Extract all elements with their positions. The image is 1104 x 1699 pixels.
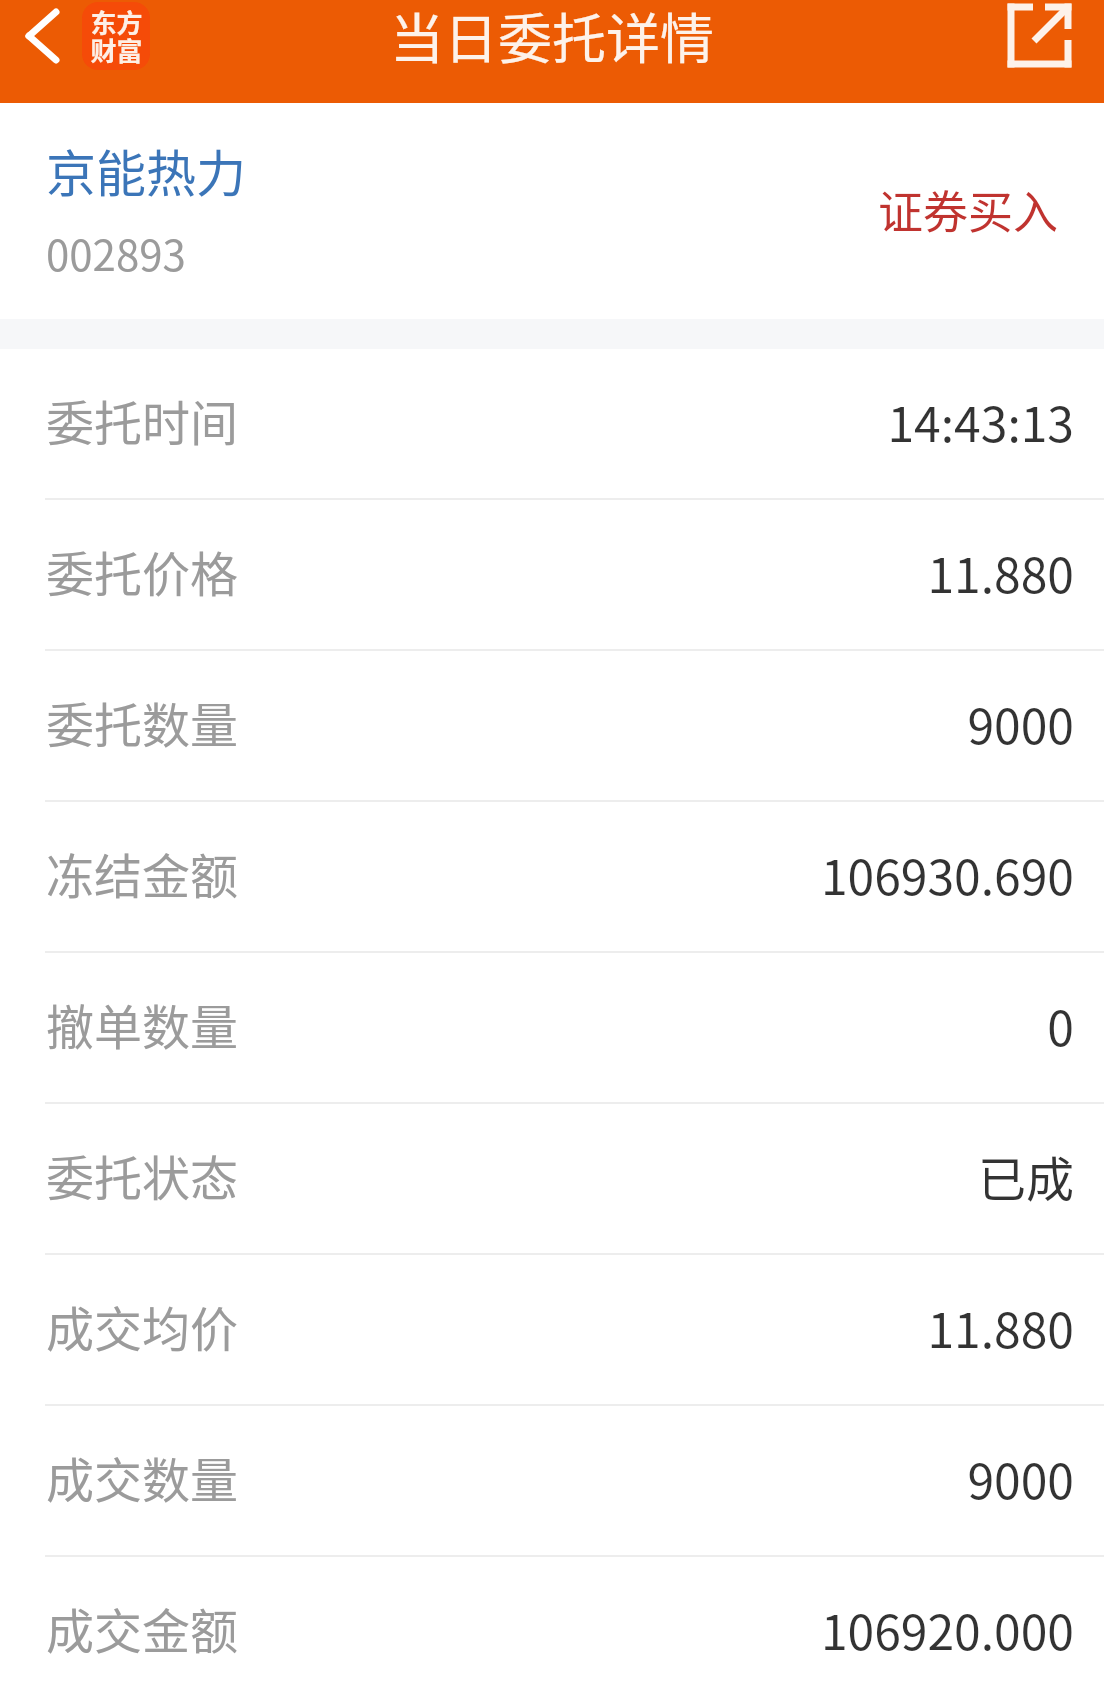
staticText: 委托状态 — [46, 1140, 239, 1210]
button[interactable]: 成交均价 — [0, 1255, 1104, 1406]
staticText: 9000 — [247, 688, 1074, 758]
button[interactable]: 委托价格 — [0, 500, 1104, 651]
staticText: 106920.000 — [247, 1594, 1074, 1664]
button[interactable]: Back — [0, 0, 78, 90]
staticText: 委托价格 — [46, 536, 239, 606]
button[interactable]: 成交数量 — [0, 1406, 1104, 1557]
staticText: 14:43:13 — [247, 386, 1074, 456]
staticText: 002893 — [46, 222, 186, 283]
staticText: 106930.690 — [247, 839, 1074, 909]
staticText: 冻结金额 — [46, 838, 239, 908]
staticText: 京能热力 — [46, 134, 246, 206]
button[interactable]: 京能热力 — [0, 103, 1104, 319]
staticText: 证券买入 — [878, 177, 1059, 242]
staticText: 成交金额 — [46, 1593, 239, 1663]
staticText: 11.880 — [247, 1292, 1074, 1362]
staticText: 当日委托详情 — [390, 0, 714, 74]
staticText: 委托数量 — [46, 687, 239, 757]
staticText: 0 — [247, 990, 1074, 1060]
button[interactable]: 冻结金额 — [0, 802, 1104, 953]
button[interactable]: 委托状态 — [0, 1104, 1104, 1255]
button[interactable]: 委托数量 — [0, 651, 1104, 802]
staticText: 已成 — [247, 1141, 1074, 1211]
staticText: 东方 财富 — [90, 3, 143, 69]
staticText: 11.880 — [247, 537, 1074, 607]
button[interactable]: 委托时间 — [0, 349, 1104, 500]
staticText: 撤单数量 — [46, 989, 239, 1059]
staticText: 9000 — [247, 1443, 1074, 1513]
staticText: 委托时间 — [46, 385, 239, 455]
button[interactable]: 成交金额 — [0, 1557, 1104, 1699]
staticText: 成交数量 — [46, 1442, 239, 1512]
button[interactable]: Share — [984, 0, 1104, 95]
staticText: 成交均价 — [46, 1291, 239, 1361]
button[interactable]: 撤单数量 — [0, 953, 1104, 1104]
